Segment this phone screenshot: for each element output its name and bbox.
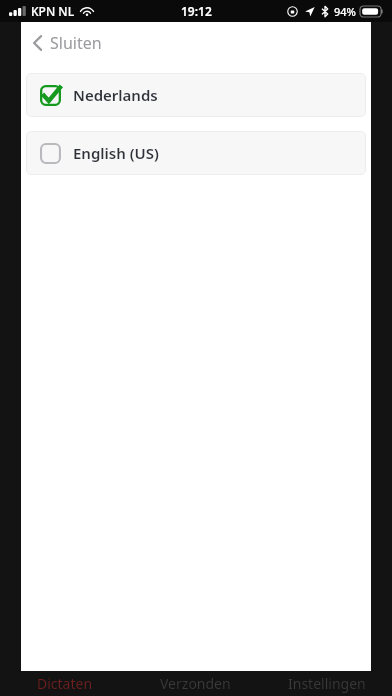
button[interactable]: Nederlands xyxy=(26,73,366,117)
staticText: 19:12 xyxy=(181,3,212,19)
button[interactable]: Instellingen xyxy=(261,671,392,696)
button[interactable]: Dictaten xyxy=(0,671,130,696)
staticText: Verzonden xyxy=(160,674,231,693)
button[interactable]: Verzonden xyxy=(130,671,261,696)
staticText: Instellingen xyxy=(288,674,366,693)
button[interactable]: English (US) xyxy=(26,131,366,175)
staticText: English (US) xyxy=(73,143,159,163)
staticText: Sluiten xyxy=(50,32,102,54)
staticText: 94% xyxy=(334,4,356,19)
staticText: Dictaten xyxy=(37,674,93,693)
staticText: KPN NL xyxy=(31,3,75,19)
staticText: Nederlands xyxy=(73,85,158,105)
button[interactable]: Sluiten xyxy=(26,26,109,60)
